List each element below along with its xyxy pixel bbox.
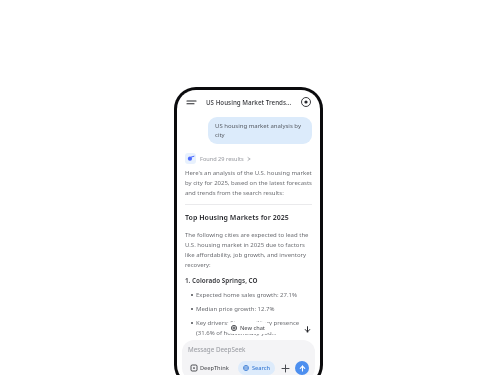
- staticText: Key drivers: Strong military presence: [196, 319, 300, 327]
- button[interactable]: US housing market analysis by city: [208, 117, 312, 144]
- staticText: US housing market analysis by city: [215, 122, 305, 139]
- button[interactable]: Scroll to bottom: [302, 324, 312, 334]
- staticText: Search: [252, 364, 270, 372]
- button[interactable]: Message DeepSeek: [188, 345, 309, 354]
- button[interactable]: Search: [238, 361, 275, 375]
- staticText: 1. Colorado Springs, CO: [185, 276, 258, 285]
- staticText: (31.6% of households), you...: [196, 329, 277, 336]
- staticText: Here's an analysis of the U.S. housing m…: [185, 169, 312, 196]
- button[interactable]: Menu: [184, 95, 198, 109]
- button[interactable]: Send: [295, 361, 309, 375]
- staticText: The following cities are expected to lea…: [185, 231, 312, 268]
- staticText: New chat: [240, 324, 266, 332]
- button[interactable]: Found 29 results: [185, 153, 251, 164]
- button[interactable]: Attach: [279, 362, 292, 375]
- staticText: Expected home sales growth: 27.1%: [196, 291, 297, 299]
- staticText: US Housing Market Trends...: [206, 98, 292, 106]
- staticText: Found 29 results: [200, 155, 244, 163]
- staticText: Top Housing Markets for 2025: [185, 213, 289, 223]
- staticText: DeepThink: [200, 364, 229, 372]
- button[interactable]: DeepThink: [188, 362, 232, 374]
- staticText: Message DeepSeek: [188, 345, 246, 354]
- button[interactable]: New chat: [226, 322, 271, 334]
- button[interactable]: New chat: [299, 95, 313, 109]
- staticText: Median price growth: 12.7%: [196, 305, 275, 313]
